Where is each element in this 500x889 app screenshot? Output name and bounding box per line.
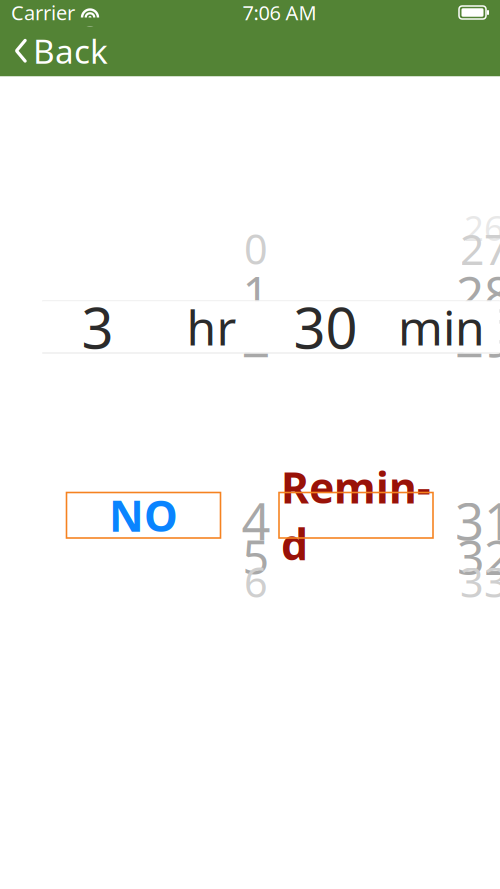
staticText: min (398, 295, 485, 359)
staticText: 0 (244, 221, 268, 276)
staticText: 6 (244, 554, 268, 609)
button[interactable]: NO (66, 492, 220, 538)
staticText: 2 (241, 304, 270, 371)
staticText: 33 (460, 554, 500, 609)
staticText: 28 (456, 260, 500, 326)
button[interactable]: Back (0, 26, 120, 76)
staticText: 27 (460, 220, 500, 277)
staticText: 30 (293, 290, 357, 364)
staticText: 26 (464, 204, 500, 250)
staticText: 4 (241, 487, 270, 554)
staticText: 3 (81, 290, 113, 364)
staticText: 31 (455, 487, 500, 554)
staticText: 29 (455, 304, 500, 371)
staticText: 5 (242, 525, 269, 587)
button[interactable]: Remind (279, 492, 433, 538)
staticText: Remind (281, 459, 431, 572)
staticText: Carrier (11, 0, 75, 26)
staticText: Back (33, 29, 108, 73)
staticText: hr (186, 295, 236, 359)
staticText: NO (109, 487, 178, 544)
staticText: 32 (457, 525, 500, 588)
staticText: 1 (242, 262, 269, 324)
staticText: 7:06 AM (242, 0, 316, 26)
